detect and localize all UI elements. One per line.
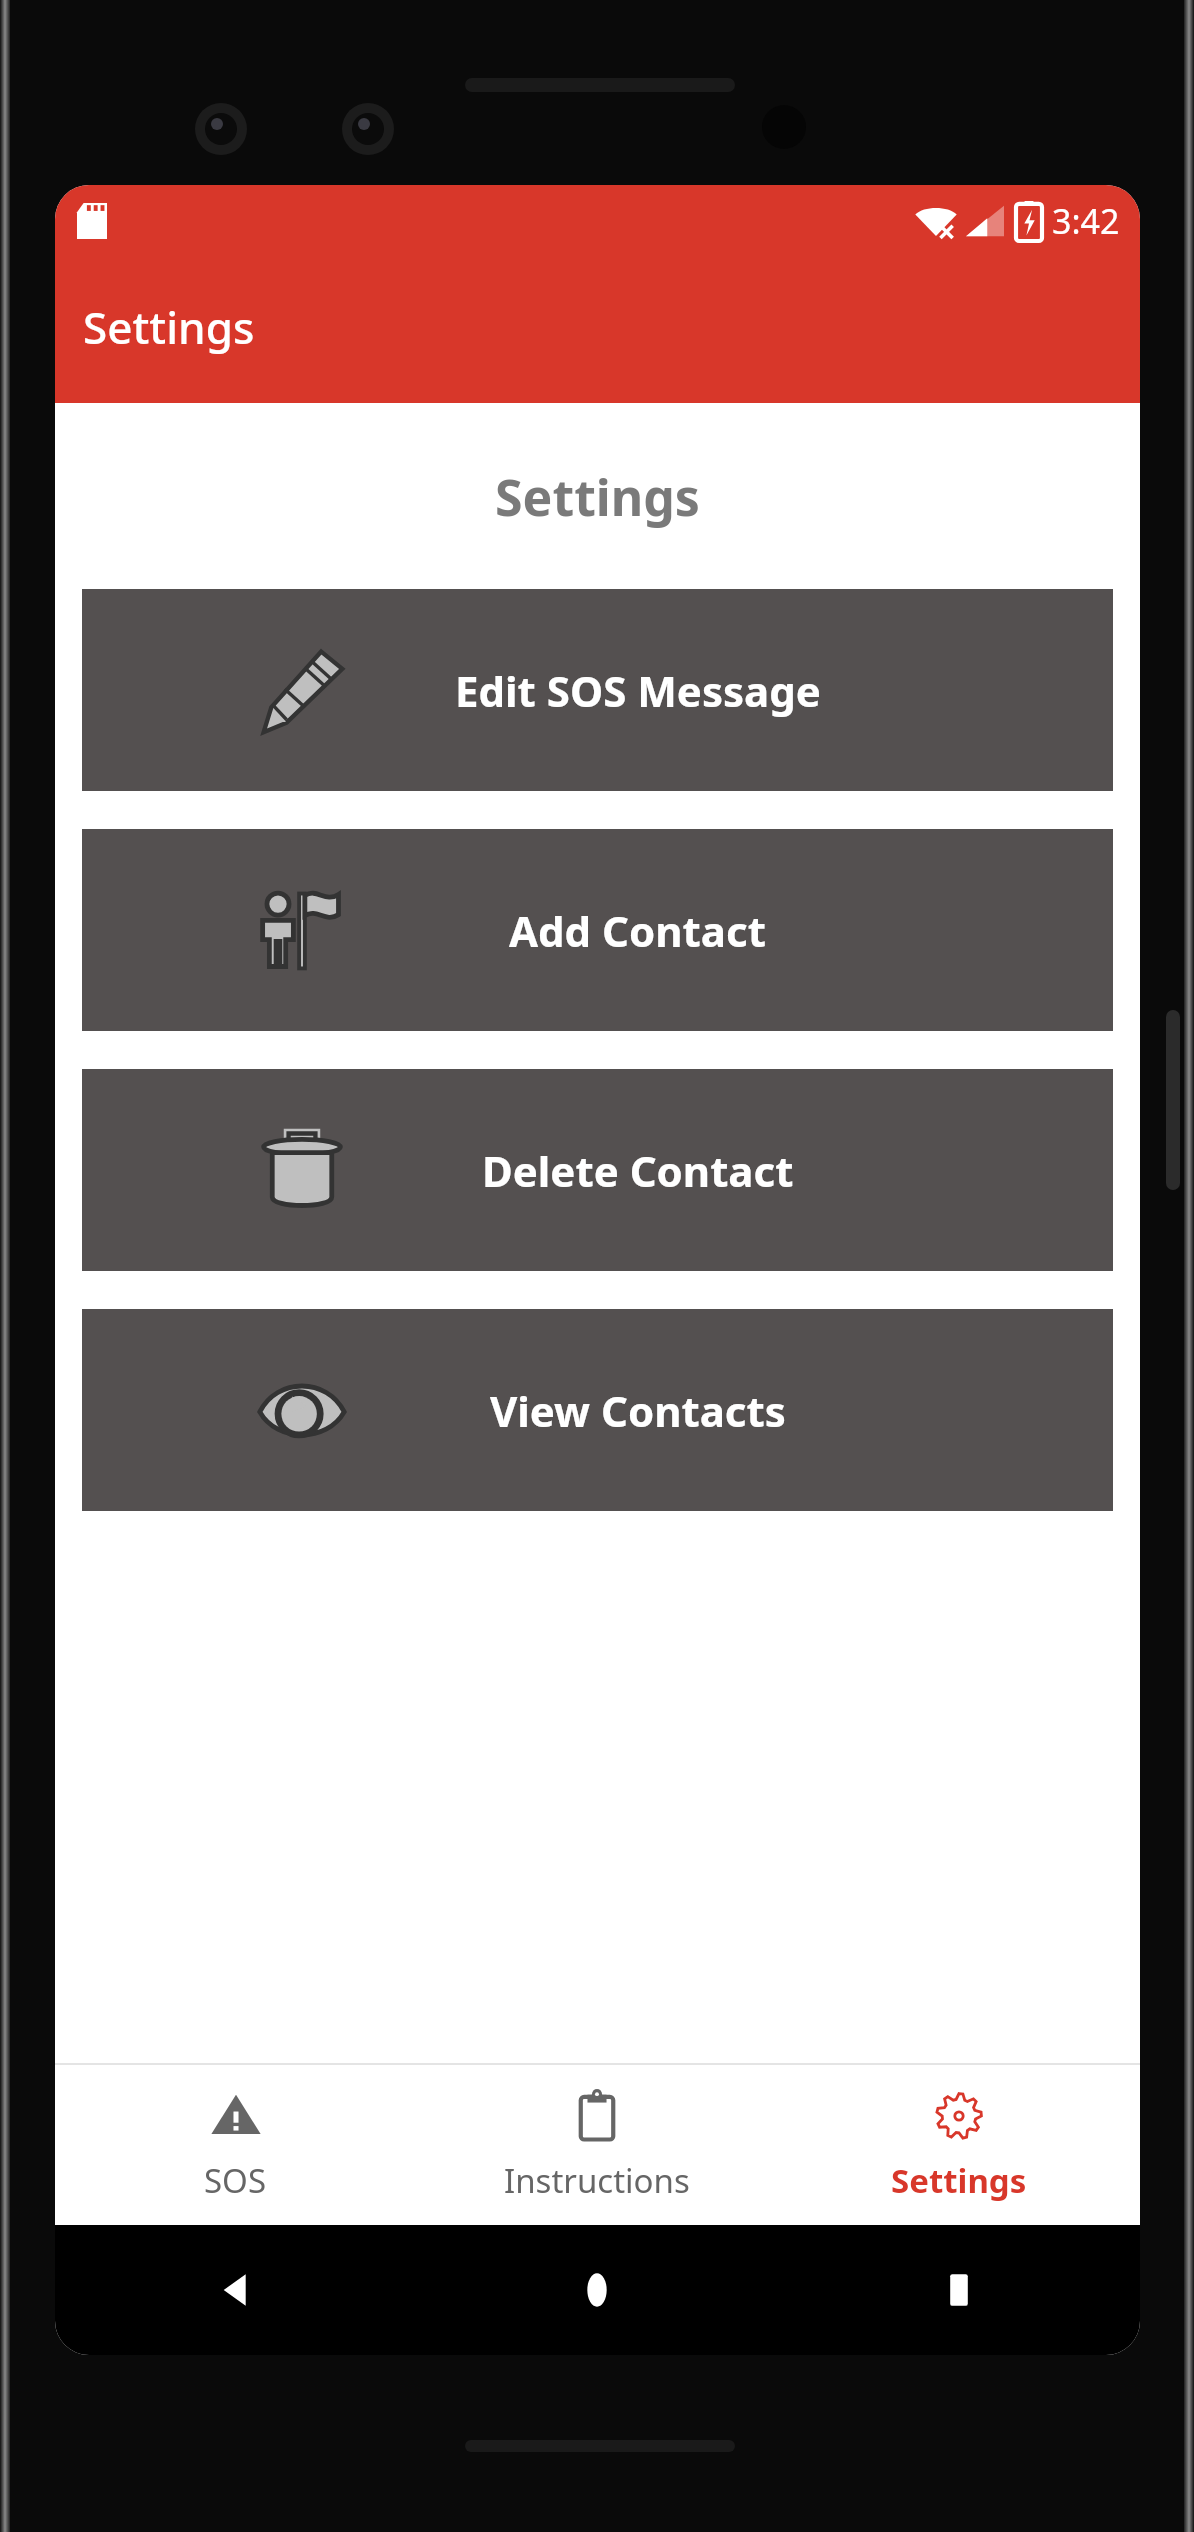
staticText: Edit SOS Message (455, 662, 821, 719)
staticText: Instructions (504, 2158, 690, 2203)
button[interactable]: View Contacts (82, 1309, 1113, 1511)
staticText: Add Contact (509, 902, 766, 959)
staticText: Settings (55, 463, 1140, 531)
button[interactable]: Recent apps (778, 2225, 1140, 2355)
button[interactable]: SOS (55, 2065, 416, 2225)
button[interactable]: Delete Contact (82, 1069, 1113, 1271)
button[interactable]: Settings (55, 257, 1140, 403)
button[interactable]: Instructions (416, 2065, 778, 2225)
button[interactable]: Settings (778, 2065, 1140, 2225)
staticText: Settings (83, 297, 255, 357)
staticText: Settings (891, 2158, 1027, 2203)
staticText: SOS (204, 2158, 267, 2203)
staticText: Delete Contact (482, 1142, 794, 1199)
staticText: 3:42 (1052, 198, 1120, 244)
button[interactable]: Back (55, 2225, 416, 2355)
staticText: View Contacts (490, 1382, 786, 1439)
button[interactable]: Home (416, 2225, 778, 2355)
button[interactable]: Edit SOS Message (82, 589, 1113, 791)
button[interactable]: Add Contact (82, 829, 1113, 1031)
